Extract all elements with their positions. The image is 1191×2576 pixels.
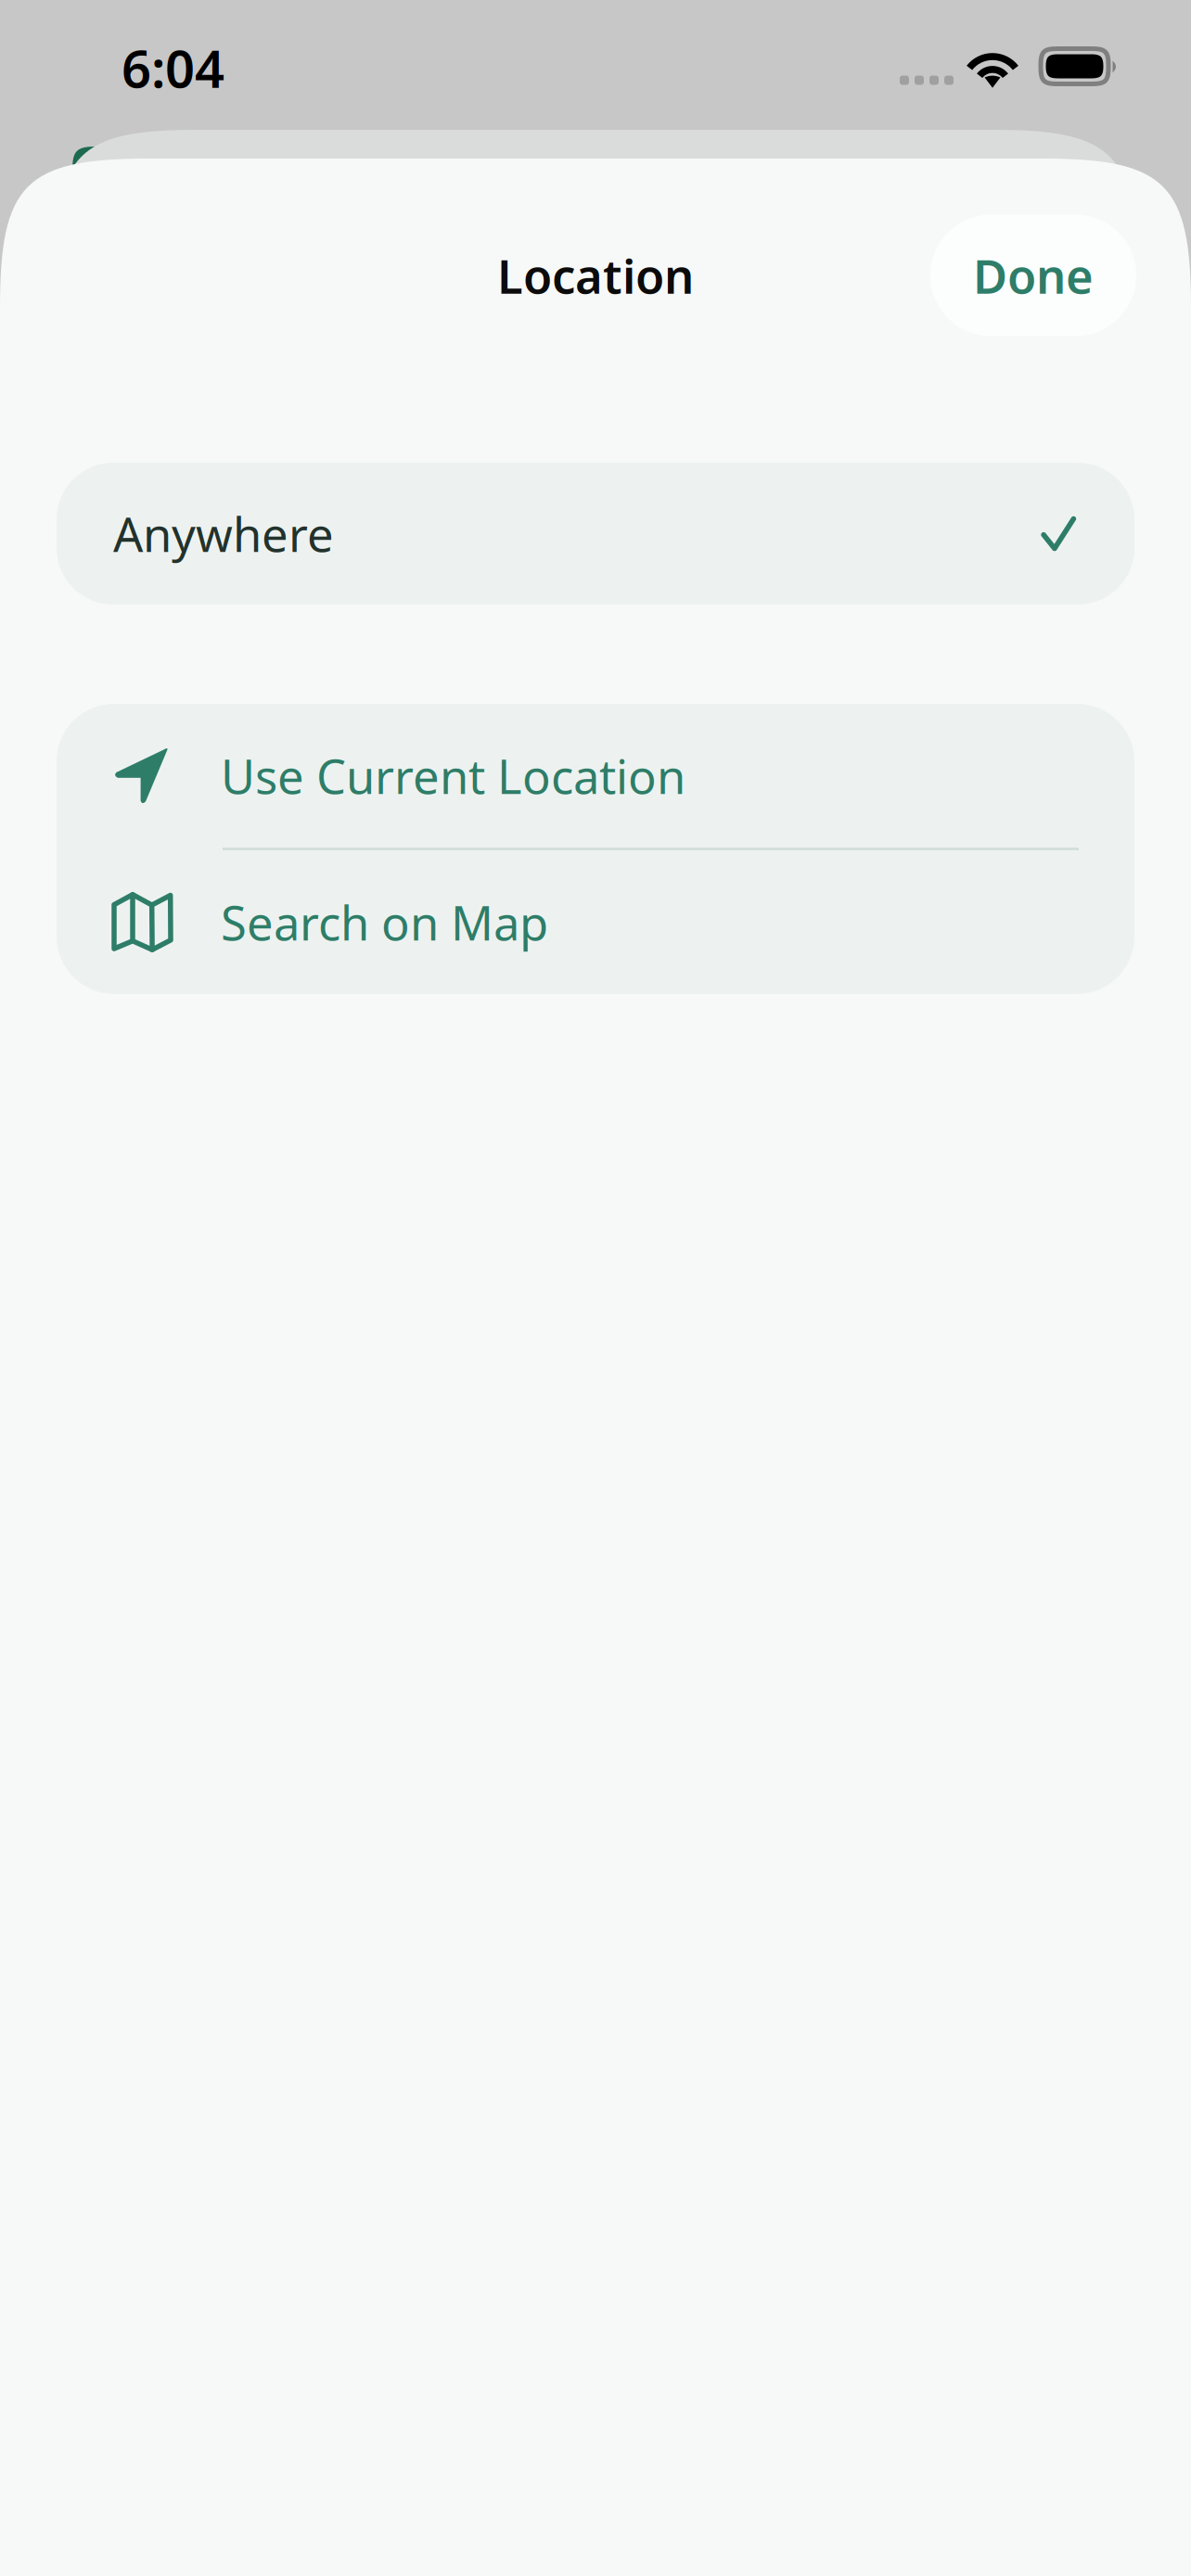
button[interactable]: Done bbox=[930, 215, 1136, 336]
button[interactable]: Use Current Location bbox=[57, 704, 1134, 848]
staticText: Use Current Location bbox=[221, 745, 685, 807]
staticText: Done bbox=[973, 244, 1094, 307]
staticText: 6:04 bbox=[122, 33, 224, 102]
button[interactable]: Anywhere bbox=[57, 463, 1134, 605]
staticText: Location bbox=[497, 244, 694, 307]
staticText: Search on Map bbox=[221, 891, 548, 953]
staticText: Anywhere bbox=[113, 502, 334, 565]
button[interactable]: Search on Map bbox=[57, 850, 1134, 994]
